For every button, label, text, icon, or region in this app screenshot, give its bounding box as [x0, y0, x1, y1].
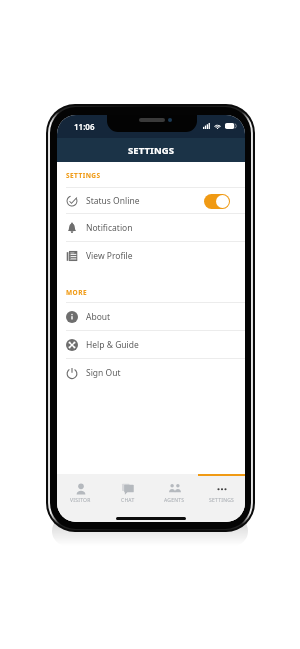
button[interactable]: Agents	[151, 474, 198, 503]
button[interactable]: Chat	[104, 474, 151, 503]
staticText: SETTINGS	[209, 497, 235, 503]
staticText: Notification	[86, 222, 133, 234]
staticText: SETTINGS	[128, 144, 175, 157]
staticText: About	[86, 311, 111, 323]
staticText: CHAT	[121, 497, 135, 503]
staticText: View Profile	[86, 250, 133, 262]
button[interactable]: Sign Out	[57, 359, 245, 387]
staticText: SETTINGS	[66, 171, 101, 180]
button[interactable]: Help & Guide	[57, 331, 245, 359]
staticText: VISITOR	[70, 497, 91, 503]
staticText: Help & Guide	[86, 339, 139, 351]
button[interactable]: Notification	[57, 214, 245, 242]
button[interactable]: View Profile	[57, 242, 245, 270]
staticText: 11:06	[74, 121, 95, 132]
staticText: AGENTS	[164, 497, 185, 503]
button[interactable]: Visitor	[57, 474, 104, 503]
staticText: Sign Out	[86, 367, 121, 379]
button[interactable]: Status Online	[57, 188, 245, 214]
staticText: MORE	[66, 288, 87, 297]
staticText: Status Online	[86, 195, 140, 207]
button[interactable]: Settings	[198, 474, 245, 503]
button[interactable]: About	[57, 303, 245, 331]
